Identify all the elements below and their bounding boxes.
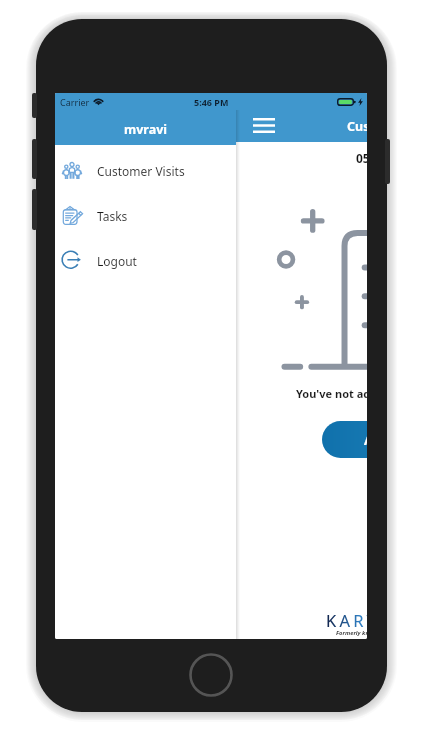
- staticText: Customer Visits: [97, 163, 185, 179]
- button[interactable]: Tasks: [55, 193, 236, 238]
- button[interactable]: Customer Visits: [55, 148, 236, 193]
- staticText: Formerly known as Karvy: [336, 629, 367, 637]
- button[interactable]: Logout: [55, 238, 236, 283]
- staticText: KARVY: [326, 609, 367, 631]
- staticText: Customer Visits: [347, 118, 367, 135]
- staticText: 5:46 PM: [194, 96, 229, 108]
- staticText: Logout: [97, 253, 137, 269]
- staticText: 05-10-2021: [356, 150, 367, 166]
- staticText: mvravi: [124, 121, 168, 138]
- staticText: Carrier: [60, 96, 90, 108]
- staticText: Tasks: [97, 208, 128, 224]
- button[interactable]: Open navigation drawer: [249, 109, 279, 141]
- staticText: Add Visit: [364, 431, 367, 449]
- button[interactable]: Add Visit: [322, 421, 367, 458]
- staticText: You've not added any Customer Vis: [296, 386, 367, 401]
